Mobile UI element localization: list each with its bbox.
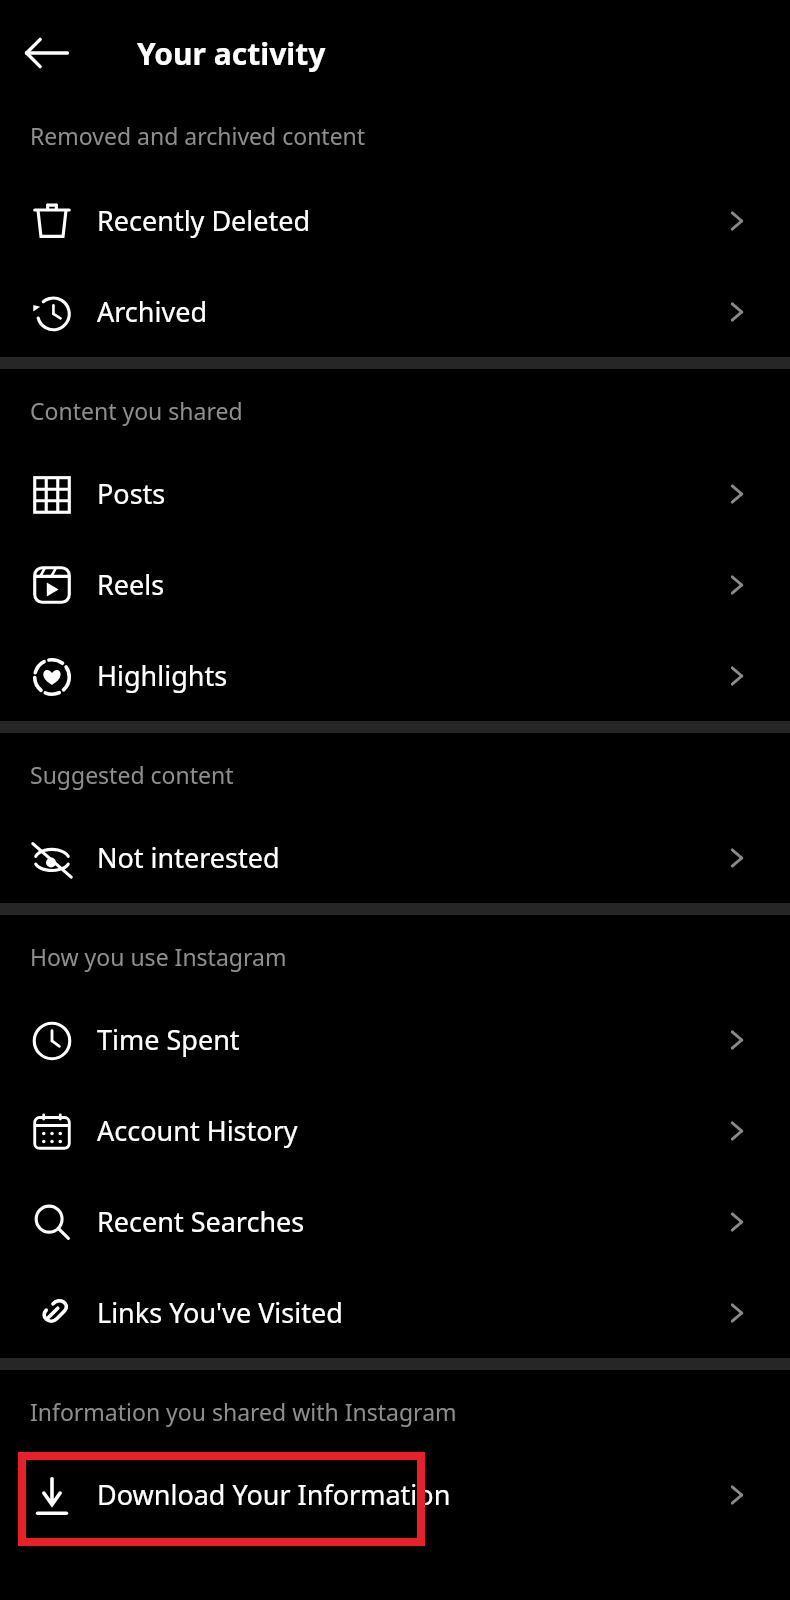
staticText: Not interested <box>97 839 280 876</box>
button[interactable]: Archived <box>0 266 790 357</box>
button[interactable]: Links You've Visited <box>0 1267 790 1358</box>
staticText: Removed and archived content <box>30 120 366 151</box>
staticText: Your activity <box>137 33 326 74</box>
button[interactable]: Account History <box>0 1085 790 1176</box>
button[interactable]: Not interested <box>0 812 790 903</box>
staticText: Content you shared <box>30 395 243 426</box>
button[interactable]: Download Your Information <box>0 1449 790 1540</box>
staticText: Time Spent <box>97 1021 240 1058</box>
button[interactable]: Posts <box>0 448 790 539</box>
staticText: Reels <box>97 566 165 603</box>
staticText: How you use Instagram <box>30 941 287 972</box>
button[interactable]: Highlights <box>0 630 790 721</box>
staticText: Archived <box>97 293 208 330</box>
staticText: Download Your Information <box>97 1476 451 1513</box>
button[interactable]: Reels <box>0 539 790 630</box>
staticText: Recent Searches <box>97 1203 305 1240</box>
button[interactable]: Back <box>16 22 78 84</box>
staticText: Information you shared with Instagram <box>30 1396 457 1427</box>
staticText: Recently Deleted <box>97 202 311 239</box>
staticText: Account History <box>97 1112 298 1149</box>
staticText: Posts <box>97 475 166 512</box>
staticText: Suggested content <box>30 759 234 790</box>
staticText: Links You've Visited <box>97 1294 343 1331</box>
staticText: Highlights <box>97 657 228 694</box>
button[interactable]: Recently Deleted <box>0 175 790 266</box>
button[interactable]: Recent Searches <box>0 1176 790 1267</box>
button[interactable]: Time Spent <box>0 994 790 1085</box>
